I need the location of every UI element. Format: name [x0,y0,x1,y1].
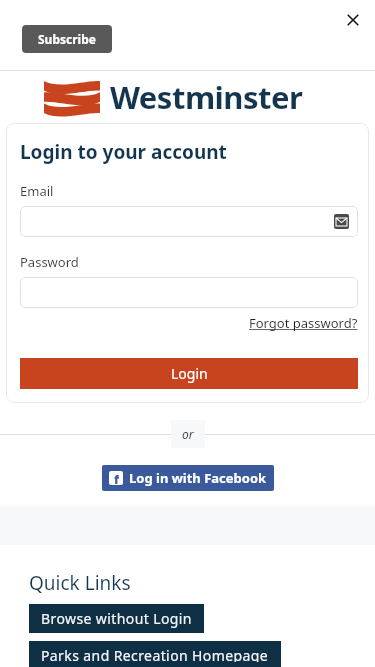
staticText: Forgot password? [249,314,358,332]
staticText: Browse without Login [41,609,192,628]
other: Email [334,214,349,229]
staticText: or [182,426,194,442]
staticText: Quick Links [29,570,131,596]
staticText: Log in with Facebook [129,469,267,487]
staticText: f [114,471,119,485]
staticText: Login [171,364,208,383]
staticText: Password [20,253,79,271]
button[interactable]: Email [20,206,358,237]
staticText: Parks and Recreation Homepage [41,646,269,662]
button[interactable]: Close [341,8,365,32]
button[interactable]: Browse without Login [29,604,204,633]
button[interactable]: Subscribe [22,25,112,53]
button[interactable]: f [102,465,274,491]
button[interactable]: Forgot password? [249,314,358,332]
button[interactable] [20,277,358,308]
staticText: Subscribe [38,31,96,47]
staticText: Login to your account [20,139,227,165]
button[interactable]: Login [20,358,358,389]
button[interactable]: Parks and Recreation Homepage [29,641,281,667]
staticText: Email [20,182,54,200]
staticText: Westminster [110,76,303,118]
